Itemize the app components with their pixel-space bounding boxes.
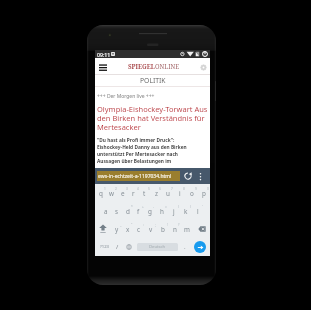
staticText: / xyxy=(116,243,119,251)
staticText: b xyxy=(161,225,165,234)
staticText: 2 xyxy=(115,187,117,191)
staticText: u xyxy=(166,189,170,198)
staticText: Deutsch xyxy=(149,244,166,250)
button[interactable]: Backspace xyxy=(193,220,210,238)
staticText: m xyxy=(184,225,190,234)
staticText: _ xyxy=(120,223,122,227)
staticText: l xyxy=(197,207,199,216)
staticText: POLITIK xyxy=(140,76,166,85)
staticText: d xyxy=(126,207,130,216)
staticText: s xyxy=(115,207,119,216)
staticText: h xyxy=(160,207,164,216)
staticText: 0 xyxy=(207,187,209,191)
staticText: ! xyxy=(167,223,168,227)
button[interactable]: Enter xyxy=(192,238,208,256)
button[interactable]: r xyxy=(128,184,139,202)
button[interactable]: i xyxy=(174,184,186,202)
button[interactable]: z xyxy=(150,184,162,202)
button[interactable]: Menu xyxy=(96,60,110,74)
button[interactable]: m xyxy=(181,220,193,238)
button[interactable]: Deutsch xyxy=(137,243,178,251)
button[interactable]: b xyxy=(157,220,169,238)
staticText: p xyxy=(202,189,206,198)
button[interactable]: More options xyxy=(196,170,205,183)
staticText: n xyxy=(173,225,177,234)
staticText: 4 xyxy=(137,187,139,191)
button[interactable]: l xyxy=(192,202,204,220)
staticText: g xyxy=(148,207,152,216)
button[interactable]: ?123 xyxy=(96,238,113,256)
staticText: = xyxy=(165,205,167,209)
staticText: k xyxy=(184,207,188,216)
staticText: a xyxy=(104,207,108,216)
staticText: +++ Der Morgen live +++ xyxy=(97,93,155,100)
staticText: v xyxy=(149,225,153,234)
button[interactable]: p xyxy=(198,184,210,202)
button[interactable]: Change language xyxy=(123,238,135,256)
button[interactable]: x xyxy=(122,220,133,238)
staticText: ? xyxy=(178,223,180,227)
staticText: ( xyxy=(178,205,179,209)
button[interactable]: q xyxy=(95,184,106,202)
button[interactable]: y xyxy=(111,220,122,238)
button[interactable]: f xyxy=(133,202,144,220)
staticText: j xyxy=(173,207,175,216)
button[interactable]: Reload xyxy=(182,170,193,181)
staticText: 1 xyxy=(104,187,106,191)
staticText: : xyxy=(143,223,144,227)
staticText: r xyxy=(132,189,135,198)
button[interactable]: v xyxy=(145,220,157,238)
button[interactable]: Settings xyxy=(196,60,210,74)
button[interactable]: h xyxy=(156,202,168,220)
button[interactable]: d xyxy=(122,202,133,220)
staticText: c xyxy=(137,225,141,234)
staticText: 3 xyxy=(126,187,128,191)
staticText: o xyxy=(190,189,194,198)
button[interactable]: c xyxy=(133,220,145,238)
staticText: SPIEGEL xyxy=(128,62,155,70)
button[interactable]: t xyxy=(139,184,150,202)
staticText: w xyxy=(109,189,114,198)
button[interactable]: POLITIK xyxy=(95,75,210,85)
button[interactable]: w xyxy=(106,184,117,202)
staticText: ; xyxy=(155,223,156,227)
button[interactable]: n xyxy=(169,220,181,238)
staticText: t xyxy=(143,189,146,198)
staticText: + xyxy=(142,205,144,209)
staticText: x xyxy=(126,225,130,234)
staticText: z xyxy=(155,189,158,198)
staticText: - xyxy=(153,205,155,209)
staticText: 09:11 xyxy=(97,51,111,58)
staticText: q xyxy=(99,189,103,198)
staticText: 5 xyxy=(148,187,150,191)
staticText: f xyxy=(137,207,140,216)
staticText: ews-in-echtzeit-a-1197034.html xyxy=(98,173,172,180)
staticText: " xyxy=(131,223,133,227)
staticText: ' xyxy=(202,205,203,209)
staticText: * xyxy=(131,205,133,209)
staticText: y xyxy=(115,225,119,234)
staticText: e xyxy=(121,189,125,198)
staticText: Olympia-Eishockey-Torwart Aus den Birken… xyxy=(97,104,208,132)
button[interactable]: g xyxy=(144,202,156,220)
button[interactable]: / xyxy=(111,238,123,256)
button[interactable]: e xyxy=(117,184,128,202)
button[interactable]: j xyxy=(168,202,180,220)
staticText: 8 xyxy=(183,187,185,191)
staticText: 7 xyxy=(171,187,173,191)
staticText: i xyxy=(179,189,181,198)
button[interactable]: Shift xyxy=(95,220,111,238)
button[interactable]: a xyxy=(100,202,111,220)
button[interactable]: k xyxy=(180,202,192,220)
button[interactable]: o xyxy=(186,184,198,202)
staticText: "Du hast als Profi immer Druck": Eishock… xyxy=(97,137,187,165)
staticText: 9 xyxy=(195,187,197,191)
button[interactable]: s xyxy=(111,202,122,220)
button[interactable]: u xyxy=(162,184,174,202)
staticText: ) xyxy=(190,205,191,209)
staticText: ?123 xyxy=(100,244,110,250)
button[interactable]: ews-in-echtzeit-a-1197034.html xyxy=(97,171,180,181)
staticText: . xyxy=(184,243,186,251)
staticText: 6 xyxy=(159,187,161,191)
